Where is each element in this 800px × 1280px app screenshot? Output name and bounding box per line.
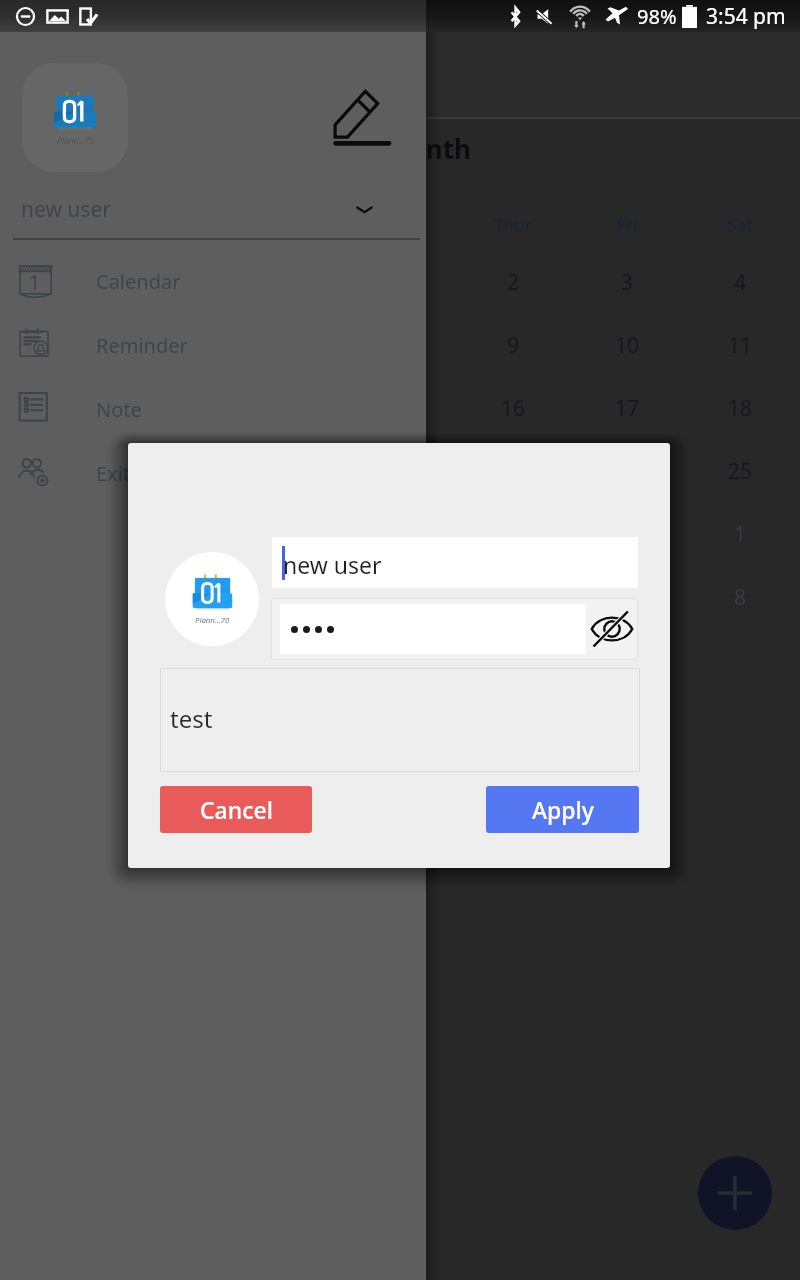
staticText: Apply: [532, 794, 594, 825]
staticText: Sun: [9, 213, 109, 236]
staticText: 28: [236, 520, 336, 549]
staticText: 3: [123, 583, 223, 612]
staticText: Calendar: [96, 268, 181, 295]
staticText: Exit: [96, 460, 131, 487]
button[interactable]: Cancel: [160, 786, 312, 833]
staticText: 12: [9, 394, 109, 423]
staticText: 20: [123, 457, 223, 486]
staticText: Thur: [463, 213, 563, 236]
staticText: 7: [577, 583, 677, 612]
staticText: 5: [9, 331, 109, 360]
staticText: Reminder: [96, 332, 188, 359]
staticText: 30: [463, 520, 563, 549]
button[interactable]: Apply: [486, 786, 639, 833]
staticText: 13: [123, 394, 223, 423]
staticText: 27: [123, 520, 223, 549]
button[interactable]: Calendar: [0, 255, 426, 307]
button[interactable]: Reminder: [0, 319, 426, 371]
staticText: 24: [577, 457, 677, 486]
staticText: 15: [350, 394, 450, 423]
staticText: 98%: [637, 3, 677, 30]
staticText: 6: [463, 583, 563, 612]
staticText: new user: [21, 195, 111, 224]
button[interactable]: new user: [0, 182, 420, 237]
staticText: 31: [577, 520, 677, 549]
button[interactable]: Show password: [586, 598, 638, 660]
staticText: Cancel: [200, 794, 273, 825]
staticText: 8: [690, 583, 790, 612]
staticText: test: [170, 702, 213, 735]
staticText: 18: [690, 394, 790, 423]
button[interactable]: Add event: [698, 1156, 772, 1230]
staticText: 30: [123, 268, 223, 297]
staticText: Wed: [350, 213, 450, 236]
button[interactable]: Edit profile: [319, 74, 405, 160]
staticText: 6: [123, 331, 223, 360]
staticText: 1: [350, 268, 450, 297]
button[interactable]: Exit: [0, 447, 426, 499]
staticText: 8: [350, 331, 450, 360]
staticText: Month: [385, 131, 471, 166]
staticText: 4: [236, 583, 336, 612]
staticText: 10: [577, 331, 677, 360]
staticText: 5: [350, 583, 450, 612]
staticText: Sat: [690, 213, 790, 236]
staticText: 25: [690, 457, 790, 486]
staticText: Plann...70: [195, 615, 230, 626]
staticText: Plann...70: [57, 135, 94, 146]
staticText: Note: [96, 396, 142, 423]
staticText: new user: [283, 549, 382, 580]
button[interactable]: Note: [0, 383, 426, 435]
staticText: 29: [350, 520, 450, 549]
staticText: 19: [9, 457, 109, 486]
staticText: 3:54 pm: [706, 2, 786, 31]
staticText: 29: [9, 268, 109, 297]
